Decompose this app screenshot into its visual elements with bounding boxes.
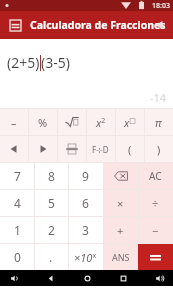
button[interactable]: . [34, 244, 68, 270]
button[interactable]: F⊹D [86, 136, 115, 162]
staticText: 8 [48, 168, 55, 184]
staticText: % [38, 115, 48, 130]
button[interactable]: 6 [68, 190, 103, 216]
other: Fraction [65, 142, 79, 156]
staticText: π [155, 115, 162, 130]
button[interactable]: Menu [5, 15, 25, 35]
staticText: (3-5) [41, 53, 70, 72]
staticText: Calculadora de Fracciones [30, 18, 166, 32]
staticText: 18:03 [152, 1, 170, 11]
staticText: 0 [14, 249, 21, 265]
staticText: − [152, 223, 159, 238]
staticText: + [117, 223, 124, 238]
staticText: 6 [82, 195, 89, 211]
staticText: (2+5) [7, 53, 40, 72]
button[interactable]: Delete [103, 163, 138, 189]
staticText: – [11, 115, 17, 130]
button[interactable]: Equals [138, 244, 173, 270]
button[interactable]: Fraction [57, 136, 86, 162]
staticText: ×10x [74, 250, 97, 265]
staticText: 5 [48, 195, 55, 211]
button[interactable]: × [103, 190, 138, 216]
button[interactable]: Volume down [6, 270, 22, 286]
staticText: . [49, 249, 53, 265]
button[interactable]: + [103, 217, 138, 243]
button[interactable]: Cursor left [0, 136, 28, 162]
button[interactable]: 1 [0, 217, 34, 243]
button[interactable]: 0 [0, 244, 34, 270]
button[interactable]: AC [138, 163, 173, 189]
button[interactable]: x2 [86, 109, 115, 135]
staticText: ÷ [152, 196, 159, 211]
staticText: 9 [82, 168, 89, 184]
button[interactable]: ( [115, 136, 144, 162]
button[interactable]: π [144, 109, 173, 135]
button[interactable]: Back [149, 15, 169, 35]
button[interactable]: 2 [34, 217, 68, 243]
button[interactable]: 4 [0, 190, 34, 216]
staticText: x2 [96, 115, 106, 130]
button[interactable]: Volume up [151, 270, 167, 286]
button[interactable]: 8 [34, 163, 68, 189]
button[interactable]: x□ [115, 109, 144, 135]
button[interactable]: ) [144, 136, 173, 162]
button[interactable]: ÷ [138, 190, 173, 216]
staticText: F⊹D [92, 144, 109, 155]
staticText: ANS [112, 251, 130, 263]
staticText: ( [128, 142, 132, 157]
button[interactable]: Square root [57, 109, 86, 135]
staticText: 1 [14, 222, 21, 238]
staticText: 3 [82, 222, 89, 238]
button[interactable]: ×10x [68, 244, 103, 270]
button[interactable]: – [0, 109, 28, 135]
staticText: x□ [124, 115, 136, 130]
staticText: × [117, 196, 124, 211]
button[interactable]: Back [42, 270, 58, 286]
button[interactable]: 7 [0, 163, 34, 189]
button[interactable]: 3 [68, 217, 103, 243]
staticText: AC [149, 169, 162, 183]
button[interactable]: Home [79, 270, 95, 286]
button[interactable]: 9 [68, 163, 103, 189]
other: Square root [65, 115, 79, 129]
button[interactable]: 5 [34, 190, 68, 216]
button[interactable]: − [138, 217, 173, 243]
staticText: -14 [150, 90, 167, 105]
other: Cursor left [7, 142, 21, 156]
other: Cursor right [36, 142, 50, 156]
staticText: ) [157, 142, 161, 157]
button[interactable]: Recents [115, 270, 131, 286]
button[interactable]: ANS [103, 244, 138, 270]
staticText: 7 [14, 168, 21, 184]
other: Delete [114, 169, 128, 183]
button[interactable]: Cursor right [28, 136, 57, 162]
button[interactable]: % [28, 109, 57, 135]
staticText: 4 [14, 195, 21, 211]
staticText: 2 [48, 222, 55, 238]
